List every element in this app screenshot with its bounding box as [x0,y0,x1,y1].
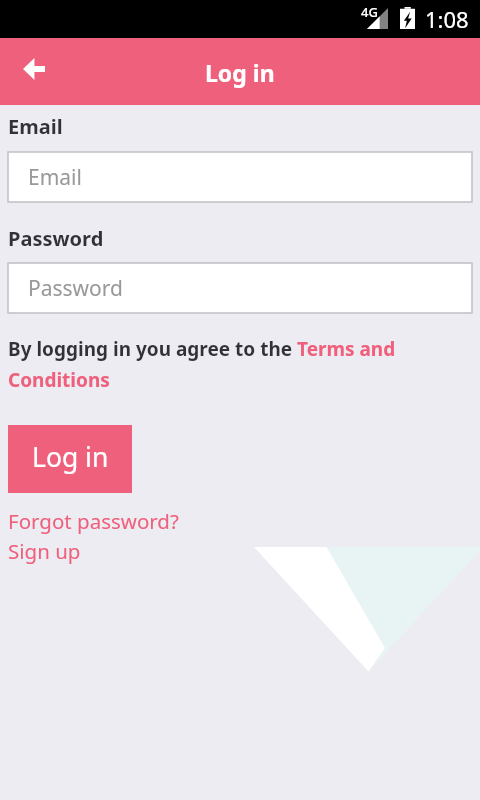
staticText: Log in [205,57,275,88]
staticText: 1:08 [425,4,469,34]
button[interactable]: Forgot password? [8,507,179,535]
button[interactable]: Sign up [8,537,81,565]
staticText: Email [28,163,82,192]
button[interactable]: Password [8,263,472,313]
button[interactable]: By logging in you agree to the Terms and… [8,336,472,393]
button[interactable]: Email [8,152,472,202]
staticText: Forgot password? [8,507,179,535]
staticText: Password [28,274,123,303]
staticText: Sign up [8,537,81,565]
staticText: Password [8,225,104,252]
staticText: 4G [361,3,378,21]
staticText: Log in [32,439,109,475]
staticText: Email [8,113,63,140]
staticText: By logging in you agree to the Terms and… [8,336,472,393]
button[interactable]: Back [11,46,56,91]
button[interactable]: Log in [8,425,132,493]
